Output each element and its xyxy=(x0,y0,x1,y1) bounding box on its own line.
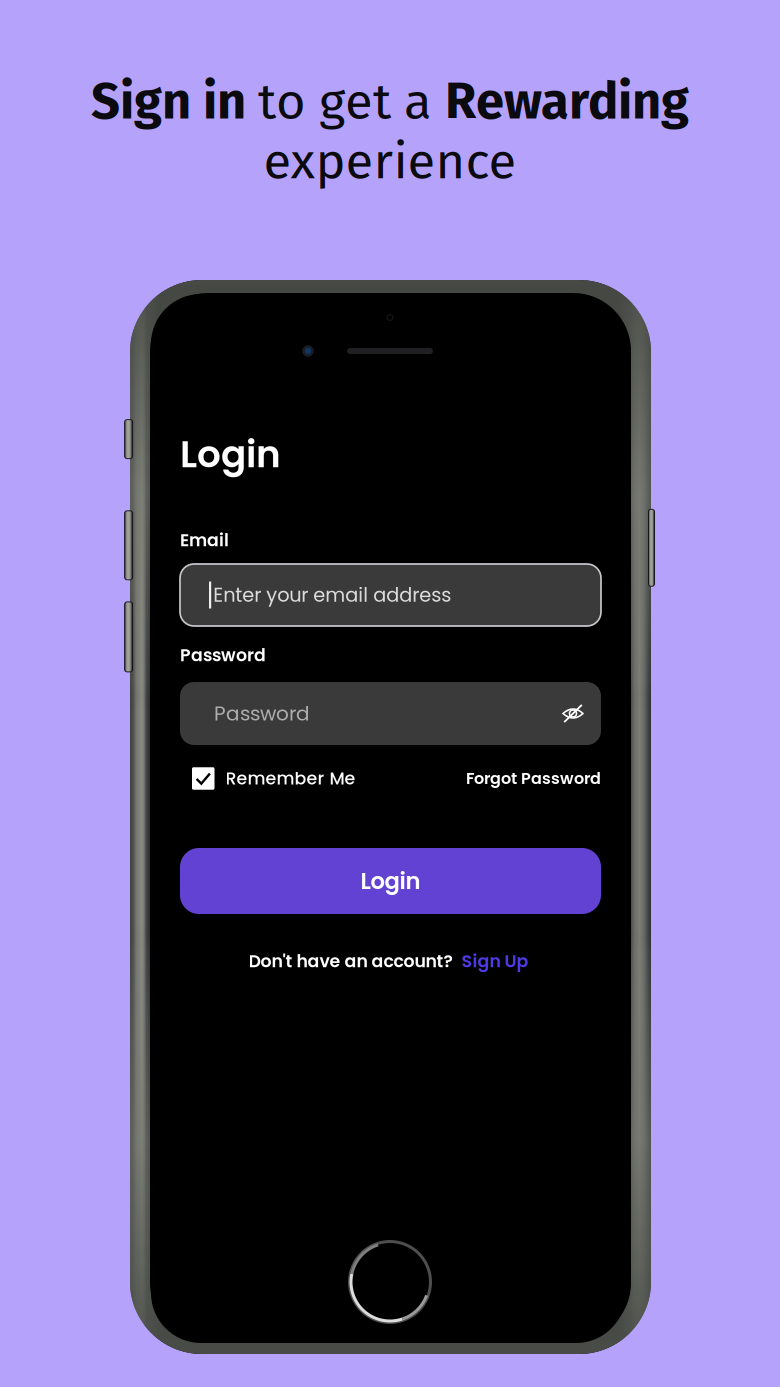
button[interactable]: Show password xyxy=(562,703,584,723)
staticText: Sign Up xyxy=(461,949,528,973)
staticText: Enter your email address xyxy=(213,581,451,609)
button[interactable]: Remember Me xyxy=(192,766,355,791)
staticText: Don't have an account? xyxy=(248,949,452,973)
staticText: Password xyxy=(180,643,266,667)
staticText: Remember Me xyxy=(225,766,355,791)
staticText: Login xyxy=(180,428,281,480)
button[interactable]: Sign Up xyxy=(461,949,528,973)
staticText: Forgot Password xyxy=(466,767,601,790)
button[interactable]: Forgot Password xyxy=(466,767,601,790)
staticText: Sign in to get a Rewarding xyxy=(91,72,689,131)
staticText: Login xyxy=(360,865,420,897)
staticText: Password xyxy=(214,699,310,727)
staticText: Email xyxy=(180,528,229,552)
button[interactable]: Login xyxy=(180,848,601,914)
staticText: experience xyxy=(263,131,516,192)
